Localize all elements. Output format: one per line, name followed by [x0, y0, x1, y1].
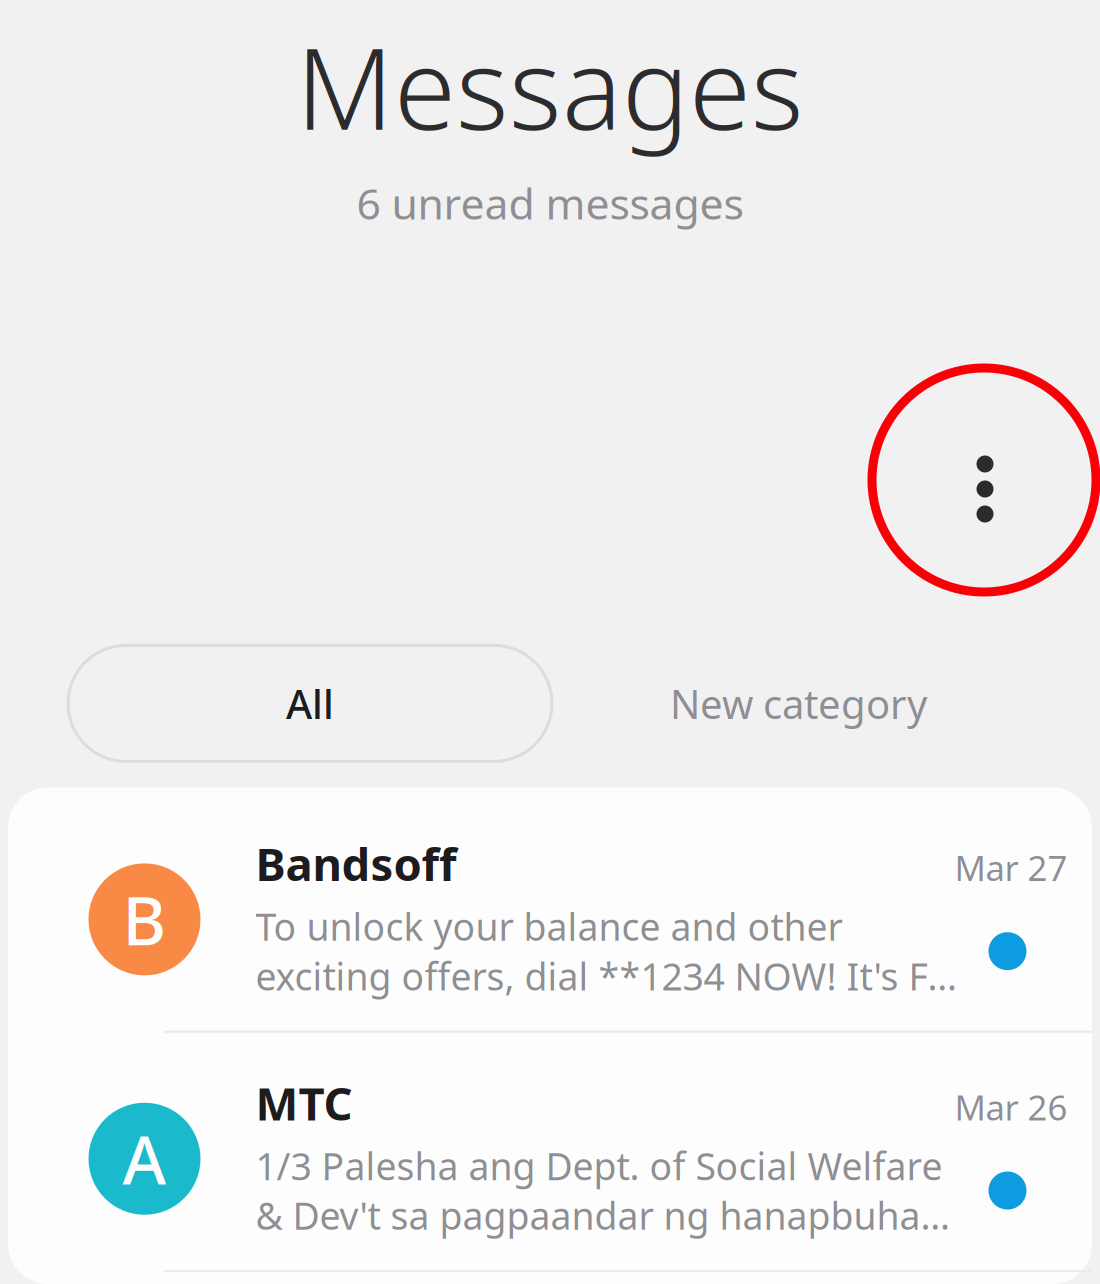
- staticText: To unlock your balance and other excitin…: [255, 902, 959, 1001]
- button[interactable]: All: [68, 645, 552, 761]
- button[interactable]: New category: [552, 645, 1045, 761]
- staticText: Bandsoff: [255, 833, 456, 894]
- staticText: 6 unread messages: [356, 175, 743, 231]
- staticText: Mar 26: [954, 1084, 1067, 1130]
- staticText: New category: [670, 677, 927, 730]
- button[interactable]: More options: [925, 429, 1045, 549]
- staticText: B: [122, 875, 166, 964]
- staticText: MTC: [255, 1073, 352, 1133]
- staticText: 1/3 Palesha ang Dept. of Social Welfare …: [255, 1141, 959, 1240]
- button[interactable]: A: [32, 1033, 1067, 1270]
- staticText: Mar 27: [954, 845, 1067, 891]
- button[interactable]: B: [32, 793, 1067, 1031]
- staticText: Messages: [296, 12, 804, 161]
- staticText: A: [122, 1114, 166, 1203]
- staticText: All: [286, 677, 334, 730]
